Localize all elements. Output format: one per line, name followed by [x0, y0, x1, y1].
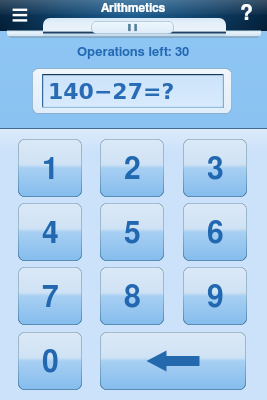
staticText: Arithmetics: [101, 2, 166, 14]
button[interactable]: 7: [18, 267, 82, 325]
staticText: 7: [42, 283, 59, 313]
button[interactable]: 8: [100, 267, 164, 325]
staticText: 9: [207, 283, 224, 313]
button[interactable]: 4: [18, 203, 82, 261]
button[interactable]: Pause: [91, 21, 174, 34]
button[interactable]: 5: [100, 203, 164, 261]
button[interactable]: Menu: [5, 0, 35, 28]
button[interactable]: Help: [234, 1, 258, 25]
button[interactable]: Backspace: [100, 332, 246, 390]
button[interactable]: 2: [100, 139, 164, 197]
staticText: 2: [124, 155, 141, 185]
staticText: 6: [207, 219, 224, 249]
staticText: 4: [42, 219, 59, 249]
button[interactable]: 6: [183, 203, 247, 261]
staticText: 140−27=?: [48, 79, 175, 105]
button[interactable]: 1: [18, 139, 82, 197]
staticText: 0: [42, 348, 59, 378]
staticText: 8: [124, 283, 141, 313]
button[interactable]: 9: [183, 267, 247, 325]
staticText: 5: [124, 219, 141, 249]
button[interactable]: 0: [18, 332, 82, 390]
staticText: 3: [207, 155, 224, 185]
staticText: ?: [240, 3, 253, 24]
staticText: 1: [42, 155, 59, 185]
staticText: Operations left: 30: [77, 46, 190, 59]
button[interactable]: 3: [183, 139, 247, 197]
